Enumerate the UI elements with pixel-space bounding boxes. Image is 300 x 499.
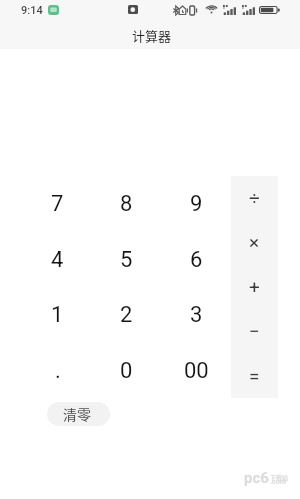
staticText: 4 xyxy=(51,247,64,273)
button[interactable]: 00 xyxy=(162,343,231,399)
staticText: ÷ xyxy=(249,187,260,209)
button[interactable]: Divide xyxy=(231,176,278,220)
button[interactable]: 8 xyxy=(92,176,161,232)
staticText: 9 xyxy=(190,191,203,217)
staticText: 7 xyxy=(51,191,64,217)
button[interactable]: 3 xyxy=(162,287,231,343)
staticText: 1 xyxy=(51,302,64,328)
staticText: 3 xyxy=(190,302,203,328)
button[interactable]: 清零 xyxy=(47,402,110,426)
button[interactable]: 4 xyxy=(23,232,92,288)
staticText: 6 xyxy=(190,247,203,273)
staticText: . xyxy=(55,358,61,384)
button[interactable]: 7 xyxy=(23,176,92,232)
button[interactable]: 2 xyxy=(92,287,161,343)
staticText: 8 xyxy=(120,191,133,217)
button[interactable]: Multiply xyxy=(231,220,278,264)
button[interactable]: 0 xyxy=(92,343,161,399)
staticText: .com xyxy=(270,478,286,486)
staticText: − xyxy=(249,320,260,342)
button[interactable]: Plus xyxy=(231,265,278,309)
button[interactable]: 1 xyxy=(23,287,92,343)
staticText: × xyxy=(249,231,260,253)
staticText: = xyxy=(249,365,260,387)
staticText: 9:14 xyxy=(21,4,43,17)
button[interactable]: Minus xyxy=(231,309,278,353)
staticText: 下载站 xyxy=(270,473,289,482)
staticText: 计算器 xyxy=(132,26,172,45)
button[interactable]: . xyxy=(23,343,92,399)
staticText: pc6 xyxy=(244,469,269,487)
button[interactable]: Equals xyxy=(231,354,278,398)
button[interactable]: 9 xyxy=(162,176,231,232)
staticText: 5 xyxy=(120,247,133,273)
staticText: 清零 xyxy=(63,404,91,424)
staticText: + xyxy=(249,276,260,298)
staticText: 0 xyxy=(120,358,133,384)
button[interactable]: 6 xyxy=(162,232,231,288)
staticText: 2 xyxy=(120,302,133,328)
button[interactable]: 5 xyxy=(92,232,161,288)
staticText: 00 xyxy=(184,358,209,384)
